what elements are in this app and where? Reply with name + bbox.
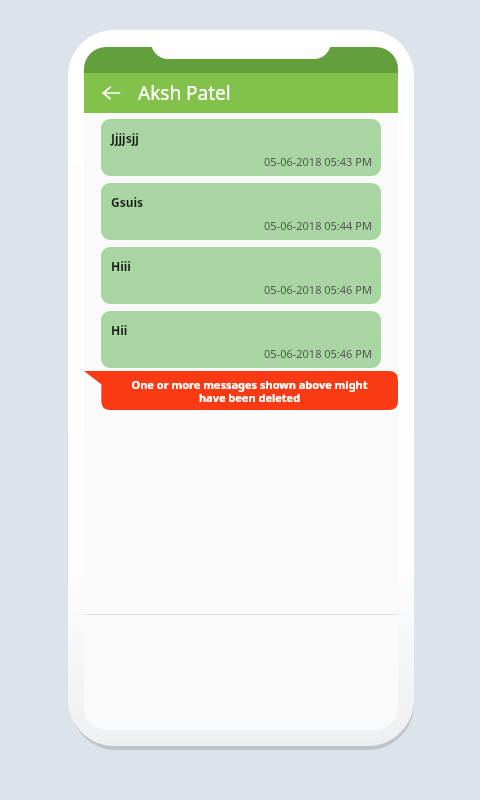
- button[interactable]: Hiii: [101, 247, 381, 304]
- button[interactable]: Hii: [101, 311, 381, 368]
- staticText: 05-06-2018 05:44 PM: [264, 218, 372, 233]
- staticText: One or more messages shown above might h…: [131, 377, 368, 405]
- staticText: Hii: [111, 322, 128, 338]
- staticText: Jjjjsjj: [111, 130, 139, 146]
- button[interactable]: Gsuis: [101, 183, 381, 240]
- staticText: 05-06-2018 05:46 PM: [264, 282, 372, 297]
- button[interactable]: Back: [94, 76, 128, 110]
- staticText: Hiii: [111, 258, 131, 274]
- button[interactable]: Jjjjsjj: [101, 119, 381, 176]
- button[interactable]: One or more messages shown above might h…: [84, 371, 398, 410]
- staticText: Gsuis: [111, 194, 144, 210]
- staticText: 05-06-2018 05:46 PM: [264, 346, 372, 361]
- staticText: Aksh Patel: [138, 80, 231, 106]
- staticText: 05-06-2018 05:43 PM: [264, 154, 372, 169]
